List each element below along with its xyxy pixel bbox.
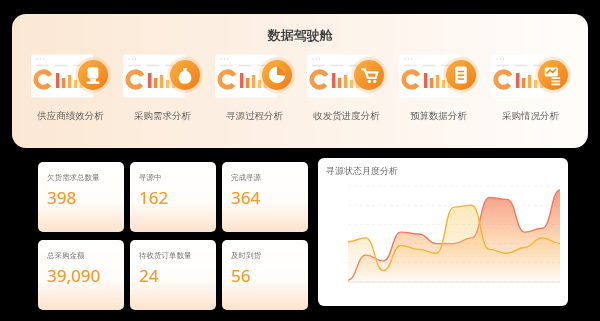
staticText: 398 — [47, 186, 77, 209]
staticText: 预算数据分析 — [410, 110, 467, 122]
button[interactable]: 欠货需求总数量 — [38, 162, 124, 232]
other: 采购情况分析 — [491, 52, 569, 102]
other: 收发货进度分析 — [307, 52, 385, 102]
button[interactable]: 收发货进度分析 — [302, 52, 390, 122]
staticText: 采购情况分析 — [502, 110, 559, 122]
button[interactable]: 预算数据分析 — [394, 52, 482, 122]
button[interactable]: 待收货订单数量 — [130, 240, 216, 310]
other: 供应商绩效分析 — [31, 52, 109, 102]
button[interactable]: 供应商绩效分析 — [26, 52, 114, 122]
staticText: 364 — [231, 186, 261, 209]
staticText: 24 — [139, 264, 159, 287]
button[interactable]: 寻源状态月度分析 — [318, 158, 568, 306]
staticText: 寻源状态月度分析 — [326, 165, 398, 176]
staticText: 总采购金额 — [47, 251, 85, 260]
other: 采购需求分析 — [123, 52, 201, 102]
button[interactable]: 完成寻源 — [222, 162, 308, 232]
button[interactable]: 及时到货 — [222, 240, 308, 310]
button[interactable]: 寻源中 — [130, 162, 216, 232]
staticText: 采购需求分析 — [134, 110, 191, 122]
other: 预算数据分析 — [399, 52, 477, 102]
staticText: 39,090 — [47, 264, 101, 287]
staticText: 162 — [139, 186, 169, 209]
button[interactable]: 采购需求分析 — [118, 52, 206, 122]
staticText: 供应商绩效分析 — [37, 110, 104, 122]
button[interactable]: 采购情况分析 — [486, 52, 574, 122]
button[interactable]: 寻源过程分析 — [210, 52, 298, 122]
staticText: 欠货需求总数量 — [47, 173, 100, 182]
staticText: 寻源中 — [139, 173, 162, 182]
staticText: 收发货进度分析 — [313, 110, 380, 122]
staticText: 数据驾驶舱 — [12, 27, 588, 43]
staticText: 寻源过程分析 — [226, 110, 283, 122]
staticText: 待收货订单数量 — [139, 251, 192, 260]
staticText: 完成寻源 — [231, 173, 261, 182]
staticText: 及时到货 — [231, 251, 261, 260]
other: 寻源过程分析 — [215, 52, 293, 102]
staticText: 56 — [231, 264, 251, 287]
button[interactable]: 总采购金额 — [38, 240, 124, 310]
